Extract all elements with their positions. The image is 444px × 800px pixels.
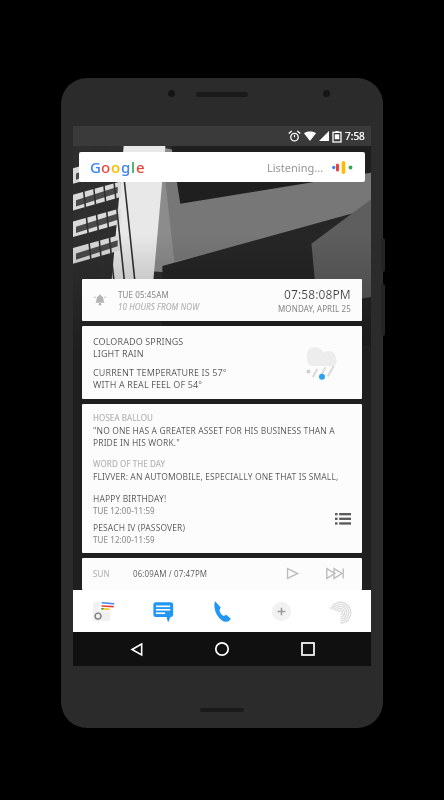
staticText: 06:09AM / 07:47PM [133,568,208,579]
button[interactable]: Back [115,632,159,666]
button[interactable]: Play [284,567,300,580]
staticText: 7:58 [345,129,365,143]
staticText: HAPPY BIRTHDAY! [93,493,167,505]
staticText: G [90,157,101,177]
staticText: PRIDE IN HIS WORK." [93,437,180,449]
staticText: "NO ONE HAS A GREATER ASSET FOR HIS BUSI… [93,425,351,437]
button[interactable]: Phone [207,596,237,626]
staticText: MONDAY, APRIL 25 [278,303,351,314]
staticText: e [136,157,145,177]
button[interactable]: HOSEA BALLOU [82,404,362,553]
staticText: Listening... [267,160,324,175]
staticText: 10 HOURS FROM NOW [118,301,200,312]
staticText: TUE 05:45AM [118,289,169,300]
button[interactable]: Add [266,596,296,626]
staticText: SUN [93,568,110,579]
staticText: l [131,157,136,177]
other: Agenda [335,513,351,526]
staticText: 07:58:08PM [284,286,351,302]
staticText: o [101,157,111,177]
button[interactable]: COLORADO SPRINGS [82,326,362,399]
staticText: o [111,157,121,177]
staticText: TUE 12:00-11:59 [93,534,155,545]
button[interactable]: TUE 05:45AM [82,279,362,321]
button[interactable]: Home [200,632,244,666]
button[interactable]: Google News [89,596,119,626]
button[interactable]: SUN [82,558,362,590]
staticText: WITH A REAL FEEL OF 54° [93,378,203,390]
staticText: LIGHT RAIN [93,347,144,359]
button[interactable]: Fingerprint [325,596,355,626]
staticText: COLORADO SPRINGS [93,335,184,347]
button[interactable]: Recent apps [286,632,330,666]
staticText: g [121,157,131,177]
staticText: TUE 12:00-11:59 [93,505,155,516]
button[interactable]: G [79,152,365,182]
staticText: FLIVVER: AN AUTOMOBILE, ESPECIALLY ONE T… [93,471,351,483]
staticText: HOSEA BALLOU [93,412,154,423]
staticText: PESACH IV (PASSOVER) [93,522,186,534]
button[interactable]: Next [326,567,346,580]
staticText: CURRENT TEMPERATURE IS 57° [93,366,227,378]
button[interactable]: Messages [148,596,178,626]
staticText: WORD OF THE DAY [93,458,166,469]
